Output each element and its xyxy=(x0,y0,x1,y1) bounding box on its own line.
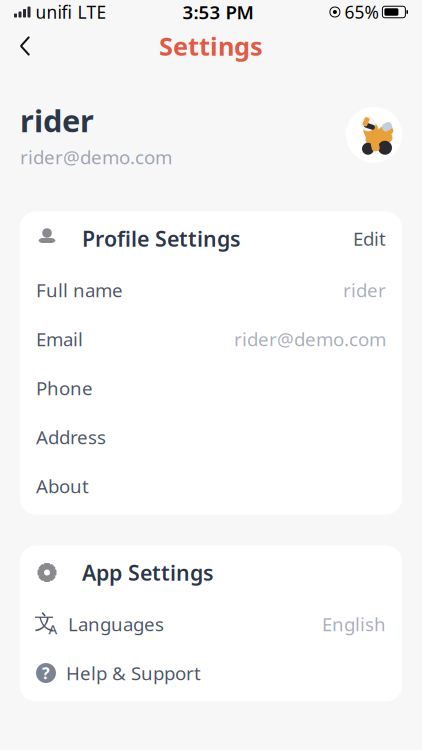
button[interactable]: About xyxy=(20,461,402,510)
button[interactable]: Full name xyxy=(20,265,402,314)
staticText: About xyxy=(36,474,89,498)
button[interactable]: 文 xyxy=(20,599,402,648)
staticText: Profile Settings xyxy=(82,224,241,253)
button[interactable]: Edit xyxy=(343,220,386,257)
button[interactable]: ? xyxy=(20,648,402,697)
button[interactable]: Address xyxy=(20,412,402,461)
button[interactable]: Back xyxy=(8,29,42,63)
staticText: rider@demo.com xyxy=(20,145,172,169)
staticText: Edit xyxy=(353,226,386,251)
staticText: 65% xyxy=(344,0,378,23)
staticText: LTE xyxy=(77,0,106,23)
staticText: rider@demo.com xyxy=(234,327,386,351)
staticText: ? xyxy=(42,662,50,684)
button[interactable]: Email xyxy=(20,314,402,363)
staticText: Settings xyxy=(159,29,263,63)
staticText: Address xyxy=(36,425,106,449)
button[interactable]: Phone xyxy=(20,363,402,412)
staticText: App Settings xyxy=(82,558,214,587)
staticText: Phone xyxy=(36,376,93,400)
staticText: English xyxy=(322,612,386,636)
staticText: Help & Support xyxy=(66,661,201,685)
staticText: A xyxy=(48,620,57,638)
staticText: rider xyxy=(20,100,94,141)
staticText: Full name xyxy=(36,278,123,302)
staticText: Languages xyxy=(68,612,164,636)
staticText: unifi xyxy=(35,0,71,23)
staticText: Email xyxy=(36,327,83,351)
staticText: rider xyxy=(343,278,386,302)
button[interactable]: Profile photo xyxy=(346,107,402,163)
staticText: 3:53 PM xyxy=(182,0,253,24)
staticText: 文 xyxy=(34,610,54,634)
